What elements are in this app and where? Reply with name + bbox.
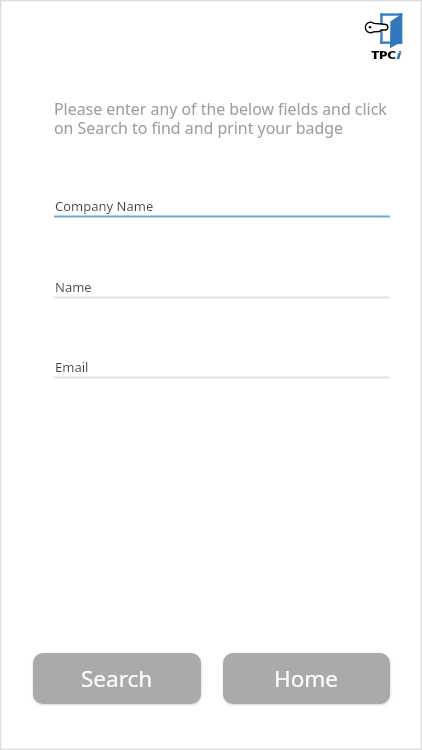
staticText: Email [55,358,89,376]
button[interactable]: Email [54,348,390,382]
staticText: TPC [371,47,397,63]
staticText: Please enter any of the below fields and… [54,98,387,139]
button[interactable]: Home [223,653,390,704]
staticText: i [397,47,402,63]
button[interactable]: Search [33,653,201,704]
button[interactable]: Company Name [54,187,390,221]
other: TPCi logo [362,0,408,60]
staticText: Name [55,278,92,296]
staticText: Company Name [55,197,154,215]
staticText: Search [81,663,153,694]
button[interactable]: Name [54,268,390,302]
staticText: Home [274,663,339,694]
